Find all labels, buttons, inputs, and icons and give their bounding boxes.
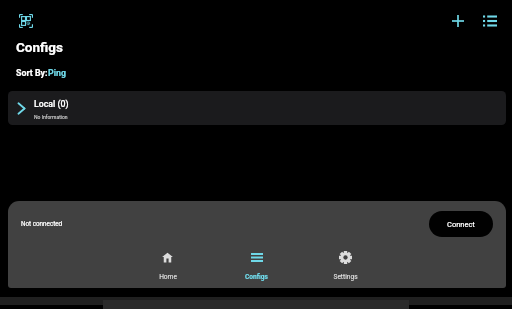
- staticText: Ping: [48, 68, 66, 78]
- button[interactable]: Add configuration: [444, 7, 471, 34]
- staticText: Connect: [447, 220, 475, 229]
- button[interactable]: Configs: [212, 246, 301, 281]
- button[interactable]: Sort By:: [16, 68, 66, 78]
- button[interactable]: Settings: [301, 246, 390, 281]
- staticText: Local (0): [34, 99, 69, 109]
- staticText: Home: [159, 273, 177, 281]
- staticText: Sort By:: [16, 68, 48, 78]
- staticText: No Information: [34, 114, 68, 120]
- staticText: Settings: [333, 273, 358, 281]
- button[interactable]: Connect: [429, 211, 493, 237]
- button[interactable]: Scan QR code: [13, 8, 39, 34]
- staticText: Configs: [16, 39, 63, 55]
- button[interactable]: Home: [123, 246, 212, 281]
- button[interactable]: Local (0): [8, 91, 506, 125]
- staticText: Not connected: [21, 220, 63, 227]
- button[interactable]: More options: [476, 7, 503, 34]
- staticText: Configs: [245, 273, 268, 281]
